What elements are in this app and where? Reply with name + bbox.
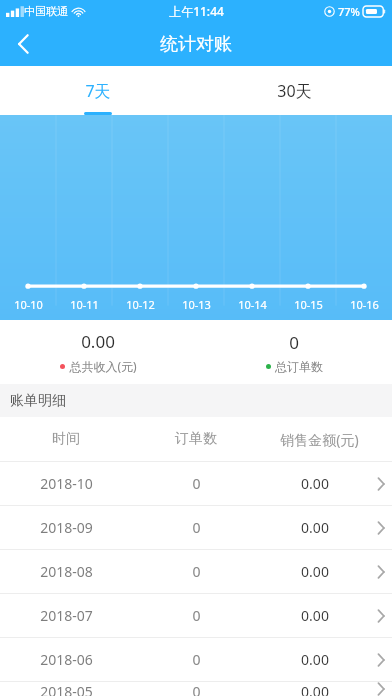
staticText: 0.00 xyxy=(81,330,115,353)
staticText: 0.00 xyxy=(301,606,329,625)
button[interactable]: 2018-07 xyxy=(0,594,392,637)
button[interactable]: 0 xyxy=(196,320,392,384)
staticText: 中国联通 xyxy=(24,4,68,18)
staticText: 10-14 xyxy=(238,297,267,312)
staticText: 30天 xyxy=(277,80,312,102)
staticText: 销售金额(元) xyxy=(280,430,359,449)
button[interactable]: 2018-08 xyxy=(0,550,392,593)
staticText: 0.00 xyxy=(301,474,329,493)
staticText: 账单明细 xyxy=(10,392,66,410)
staticText: 2018-05 xyxy=(40,682,93,696)
staticText: 0.00 xyxy=(301,518,329,537)
button[interactable]: 7天 xyxy=(0,66,196,115)
staticText: 0 xyxy=(289,331,299,354)
button[interactable]: 2018-06 xyxy=(0,638,392,681)
staticText: 0.00 xyxy=(301,682,329,696)
staticText: 0 xyxy=(192,562,201,581)
staticText: 上午11:44 xyxy=(169,3,224,19)
staticText: 0.00 xyxy=(301,562,329,581)
staticText: 7天 xyxy=(85,80,111,102)
staticText: 0 xyxy=(192,650,201,669)
staticText: 77% xyxy=(338,4,360,19)
button[interactable]: 2018-09 xyxy=(0,506,392,549)
staticText: 10-15 xyxy=(294,297,323,312)
staticText: 订单数 xyxy=(175,430,217,448)
button[interactable]: 2018-05 xyxy=(0,682,392,696)
staticText: 统计对账 xyxy=(160,33,232,56)
staticText: 10-12 xyxy=(126,297,155,312)
staticText: 0 xyxy=(192,606,201,625)
staticText: 0 xyxy=(192,474,201,493)
staticText: 10-13 xyxy=(182,297,211,312)
staticText: 2018-09 xyxy=(40,518,93,537)
staticText: 10-10 xyxy=(14,297,43,312)
staticText: 2018-06 xyxy=(40,650,93,669)
staticText: 0.00 xyxy=(301,650,329,669)
staticText: 10-16 xyxy=(350,297,379,312)
staticText: 总订单数 xyxy=(275,359,323,374)
button[interactable]: 2018-10 xyxy=(0,462,392,505)
staticText: 2018-10 xyxy=(40,474,93,493)
staticText: 0 xyxy=(192,682,201,696)
staticText: 时间 xyxy=(52,430,80,448)
staticText: 2018-08 xyxy=(40,562,93,581)
button[interactable]: Back xyxy=(0,22,46,66)
button[interactable]: 30天 xyxy=(196,66,392,115)
staticText: 10-11 xyxy=(70,297,99,312)
staticText: 0 xyxy=(192,518,201,537)
staticText: 2018-07 xyxy=(40,606,93,625)
button[interactable]: 0.00 xyxy=(0,320,196,384)
staticText: 总共收入(元) xyxy=(69,358,137,374)
